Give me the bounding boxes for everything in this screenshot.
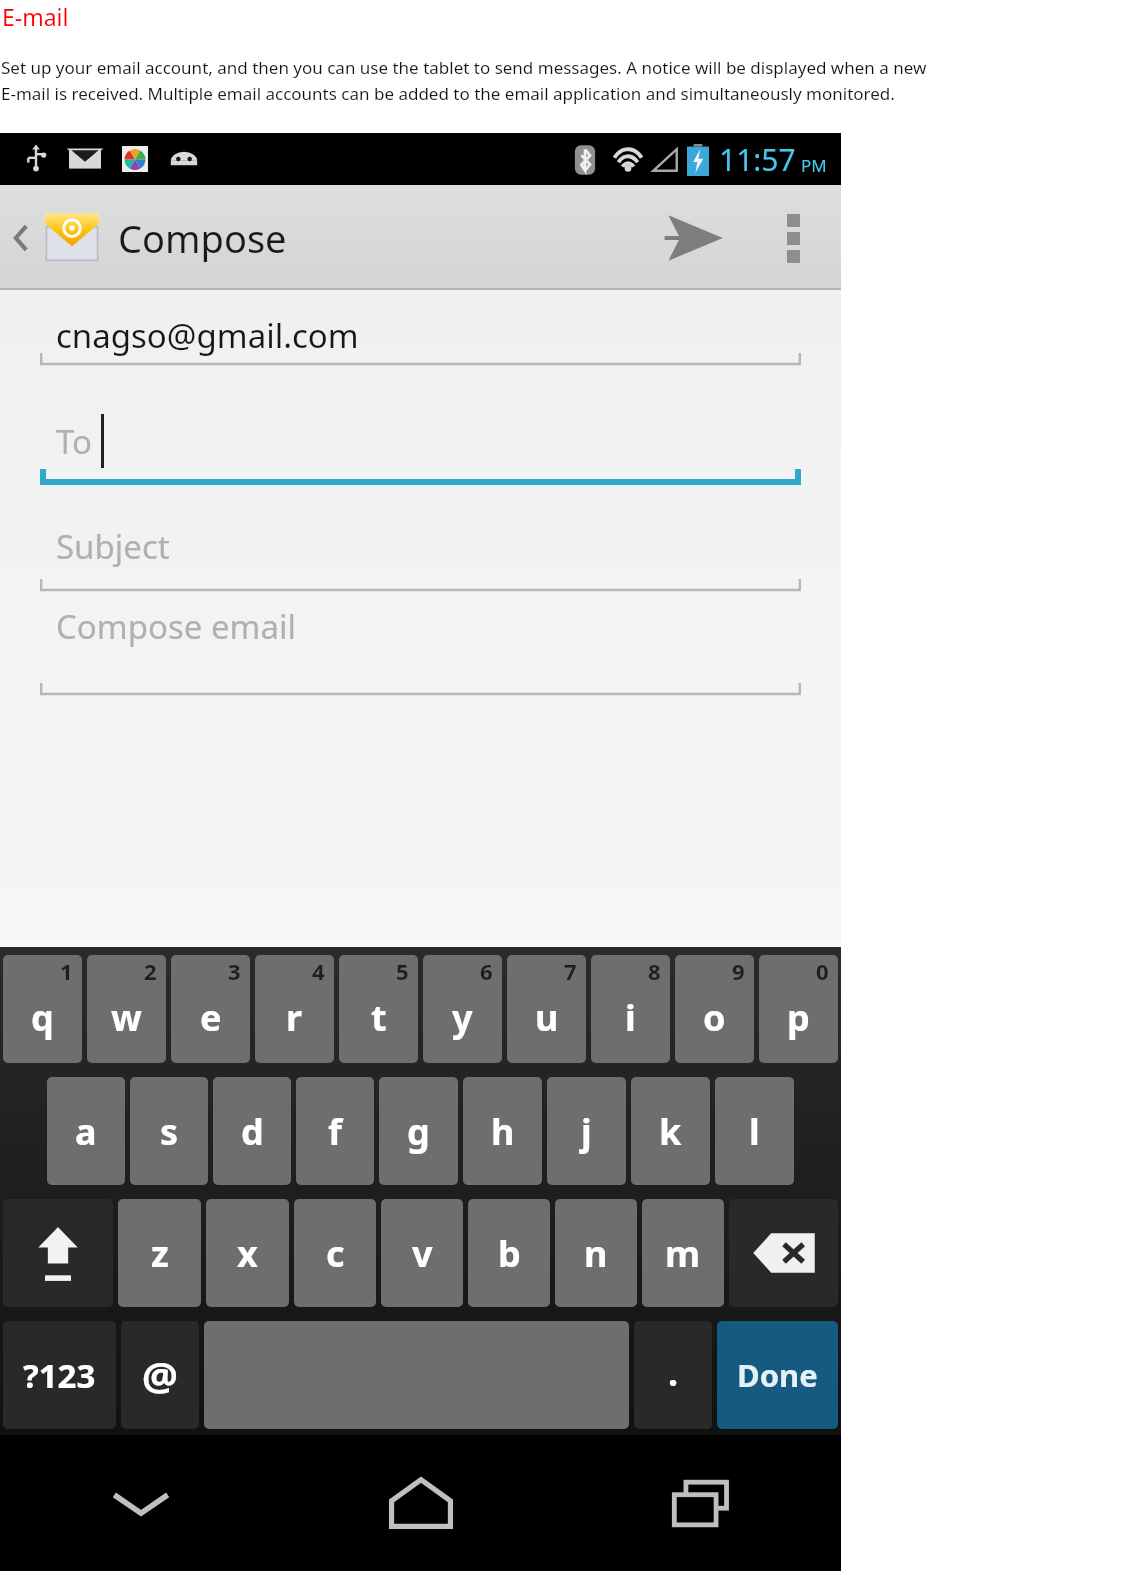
staticText: ?123 <box>23 1353 96 1398</box>
button[interactable]: v <box>381 1199 463 1307</box>
staticText: q <box>31 993 54 1042</box>
staticText: Subject <box>56 524 170 569</box>
button[interactable]: z <box>118 1199 201 1307</box>
staticText: Compose email <box>56 604 296 649</box>
button[interactable]: m <box>642 1199 724 1307</box>
button[interactable]: g <box>379 1077 458 1185</box>
button[interactable]: Home <box>281 1435 561 1571</box>
staticText: x <box>237 1229 258 1278</box>
button[interactable]: 6 <box>423 955 502 1063</box>
button[interactable]: 1 <box>3 955 82 1063</box>
button[interactable]: l <box>715 1077 794 1185</box>
staticText: 6 <box>480 956 493 986</box>
staticText: 8 <box>648 956 661 986</box>
button[interactable]: k <box>631 1077 710 1185</box>
staticText: 1 <box>60 956 73 986</box>
staticText: 4 <box>312 956 325 986</box>
button[interactable]: Done <box>717 1321 838 1429</box>
staticText: j <box>581 1107 592 1156</box>
staticText: g <box>407 1107 430 1156</box>
staticText: @ <box>142 1348 178 1402</box>
staticText: r <box>286 993 303 1042</box>
button[interactable]: Shift <box>3 1199 113 1307</box>
button[interactable]: . <box>634 1321 712 1429</box>
button[interactable]: a <box>47 1077 125 1185</box>
staticText: cnagso@gmail.com <box>56 313 359 358</box>
staticText: Done <box>737 1354 818 1396</box>
button[interactable]: Navigate up <box>8 207 287 269</box>
staticText: o <box>703 993 726 1042</box>
staticText: 11:57 <box>719 139 796 180</box>
button[interactable]: @ <box>121 1321 199 1429</box>
staticText: PM <box>801 154 827 177</box>
staticText: d <box>241 1107 264 1156</box>
staticText: h <box>491 1107 515 1156</box>
button[interactable]: 9 <box>675 955 754 1063</box>
staticText: z <box>151 1229 169 1278</box>
staticText: f <box>328 1107 342 1156</box>
staticText: 5 <box>396 956 409 986</box>
staticText: Compose <box>118 212 287 264</box>
staticText: 3 <box>228 956 241 986</box>
staticText: c <box>326 1229 345 1278</box>
button[interactable]: ?123 <box>3 1321 116 1429</box>
staticText: 0 <box>816 956 829 986</box>
staticText: s <box>160 1107 179 1156</box>
button[interactable]: 8 <box>591 955 670 1063</box>
staticText: l <box>749 1107 760 1156</box>
staticText: n <box>584 1229 608 1278</box>
staticText: p <box>787 993 810 1042</box>
staticText: E-mail is received. Multiple email accou… <box>1 82 895 105</box>
button[interactable]: b <box>468 1199 550 1307</box>
button[interactable]: d <box>213 1077 291 1185</box>
staticText: u <box>535 993 559 1042</box>
staticText: t <box>371 993 387 1042</box>
staticText: y <box>452 993 473 1042</box>
button[interactable]: Compose email <box>0 600 841 700</box>
staticText: Set up your email account, and then you … <box>1 56 927 79</box>
staticText: 7 <box>564 956 577 986</box>
button[interactable]: c <box>294 1199 376 1307</box>
staticText: w <box>111 993 142 1042</box>
staticText: To <box>56 419 93 464</box>
button[interactable]: 5 <box>339 955 418 1063</box>
button[interactable]: 0 <box>759 955 838 1063</box>
button[interactable]: s <box>130 1077 208 1185</box>
button[interactable]: 3 <box>171 955 250 1063</box>
button[interactable]: Recent apps <box>561 1435 841 1571</box>
staticText: e <box>200 993 222 1042</box>
button[interactable]: 4 <box>255 955 334 1063</box>
button[interactable]: To <box>0 400 841 488</box>
button[interactable]: x <box>206 1199 289 1307</box>
button[interactable]: Subject <box>0 504 841 596</box>
button[interactable]: n <box>555 1199 637 1307</box>
button[interactable]: Send <box>651 193 737 283</box>
staticText: . <box>668 1348 679 1397</box>
staticText: k <box>659 1107 682 1156</box>
staticText: a <box>75 1107 97 1156</box>
staticText: 2 <box>144 956 157 986</box>
staticText: E-mail <box>2 1 69 32</box>
button[interactable]: j <box>547 1077 626 1185</box>
button[interactable]: h <box>463 1077 542 1185</box>
staticText: i <box>625 993 636 1042</box>
staticText: b <box>498 1229 521 1278</box>
staticText: 9 <box>732 956 745 986</box>
staticText: m <box>665 1229 701 1278</box>
button[interactable]: cnagso@gmail.com <box>0 308 841 370</box>
button[interactable]: f <box>296 1077 374 1185</box>
button[interactable]: 7 <box>507 955 586 1063</box>
staticText: v <box>412 1229 433 1278</box>
button[interactable]: 2 <box>87 955 166 1063</box>
button[interactable]: More options <box>771 193 815 283</box>
button[interactable]: Hide keyboard <box>0 1435 281 1571</box>
button[interactable]: Backspace <box>729 1199 838 1307</box>
